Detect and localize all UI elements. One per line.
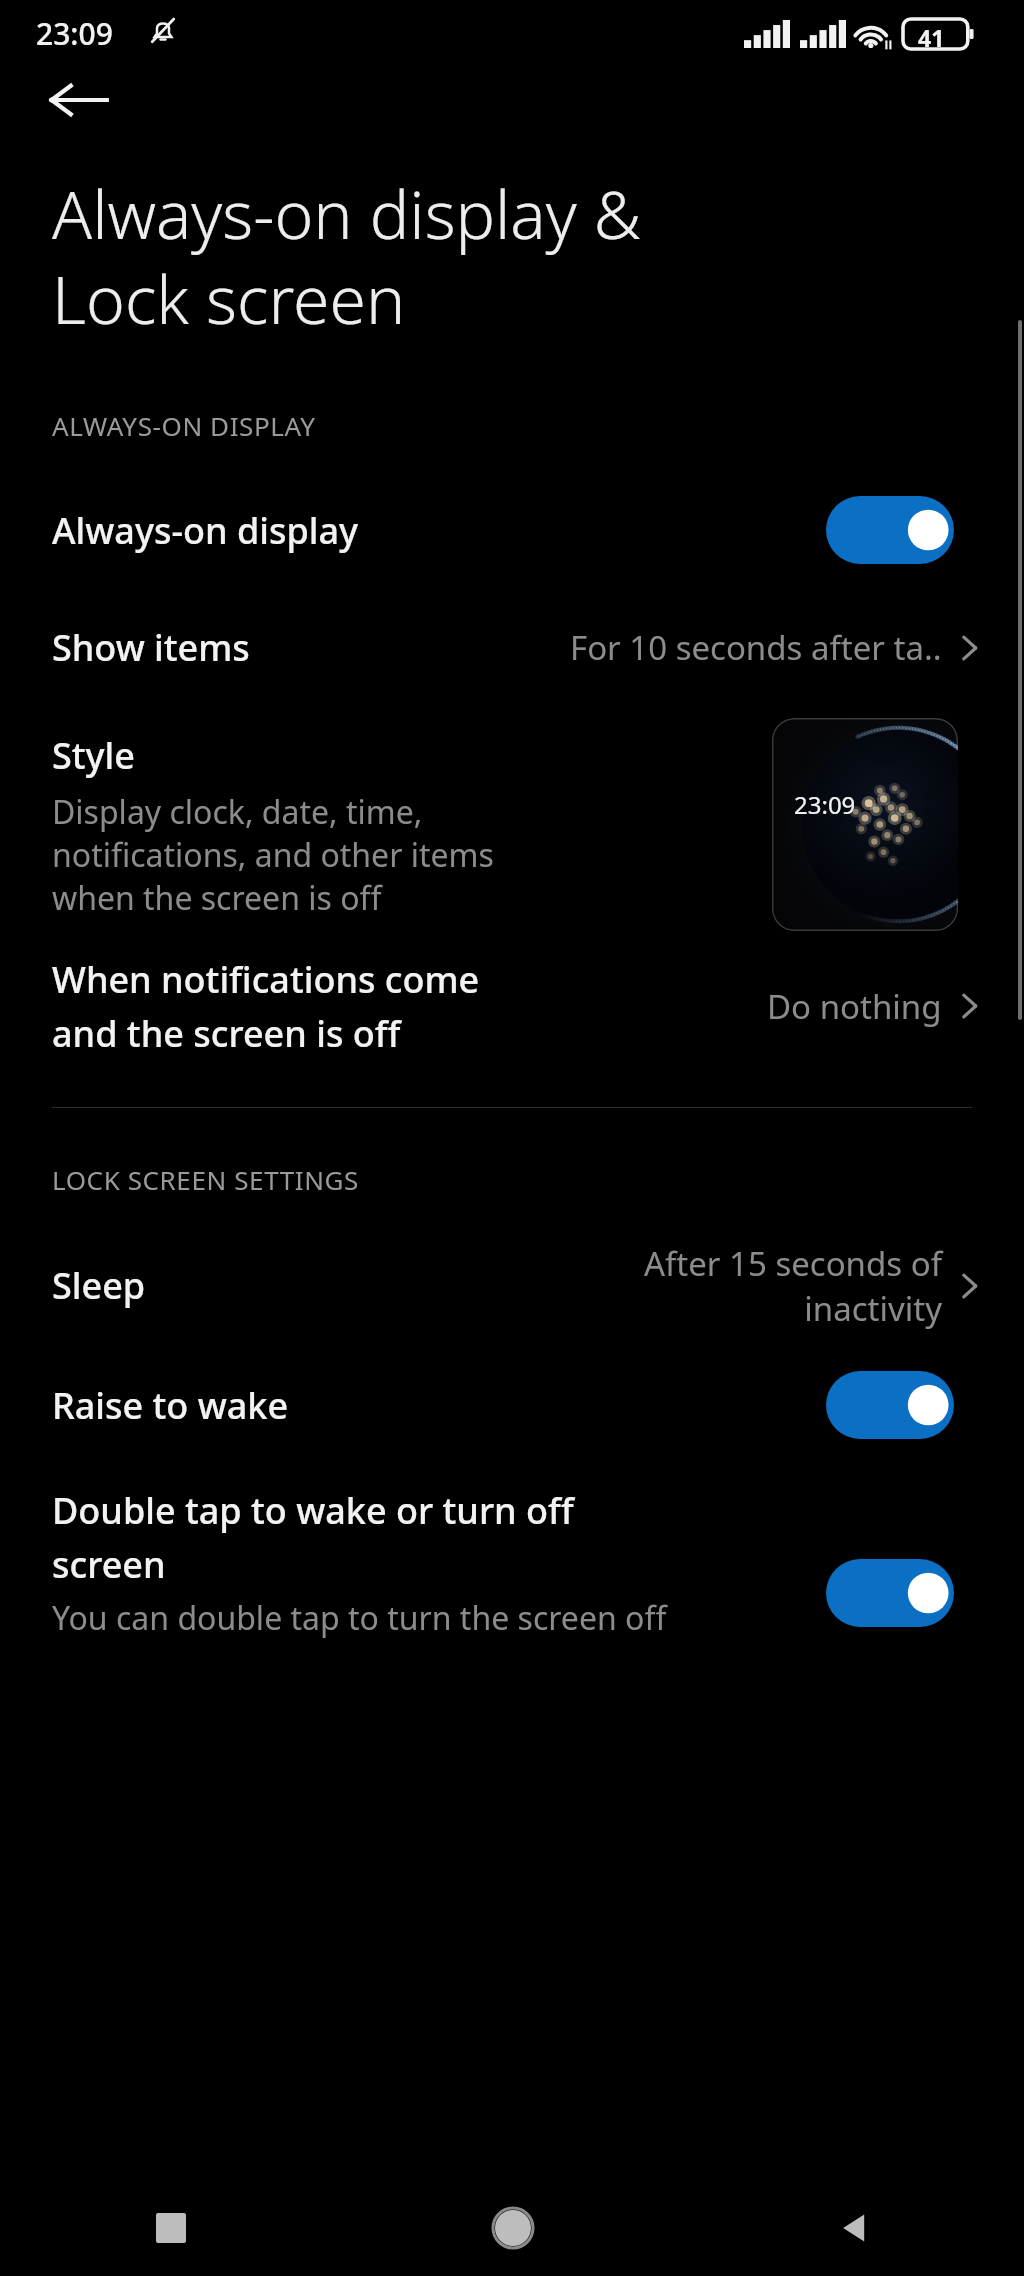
staticText: Show items [52,623,250,672]
staticText: 23:09 [36,13,113,54]
staticText: After 15 seconds of inactivity [643,1241,942,1330]
button[interactable]: Back [30,62,126,138]
staticText: LOCK SCREEN SETTINGS [52,1162,359,1197]
staticText: ALWAYS-ON DISPLAY [52,408,316,443]
button[interactable]: Home [342,2180,683,2276]
staticText: Do nothing [767,984,942,1029]
staticText: 23:09 [794,788,856,821]
button[interactable]: When notifications come and the screen i… [0,955,1024,1057]
staticText: For 10 seconds after ta.. [570,625,942,670]
staticText: Always-on display [52,506,826,555]
staticText: Raise to wake [52,1381,826,1430]
button[interactable]: Show items [0,623,1024,672]
button[interactable]: Style [0,718,1024,931]
staticText: Always-on display & Lock screen [52,168,642,344]
button[interactable]: Raise to wake [0,1370,1024,1440]
staticText: 41 [918,22,945,53]
staticText: Style [52,731,135,780]
button[interactable]: Double tap to wake or turn off screen [0,1486,1024,1640]
button[interactable]: Back [683,2180,1024,2276]
button[interactable]: Always-on display [0,495,1024,565]
staticText: Double tap to wake or turn off screen [52,1486,574,1588]
staticText: You can double tap to turn the screen of… [52,1596,667,1640]
staticText: When notifications come and the screen i… [52,955,757,1057]
staticText: Sleep [52,1261,146,1310]
button[interactable]: Recent apps [0,2180,342,2276]
staticText: Display clock, date, time, notifications… [52,790,494,919]
button[interactable]: Sleep [0,1241,1024,1330]
